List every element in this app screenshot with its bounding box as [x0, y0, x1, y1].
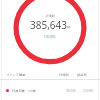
staticText: 円 — [67, 26, 71, 30]
staticText: 損益率 — [77, 73, 87, 77]
staticText: 100.00% — [83, 89, 94, 93]
staticText: 日興日株 — [12, 89, 25, 93]
staticText: 評価額 — [59, 73, 69, 77]
staticText: ベ日株 — [27, 89, 37, 93]
staticText: 385,643 — [66, 89, 76, 93]
staticText: ファンド概要 — [6, 73, 26, 77]
staticText: 100.00% — [44, 35, 56, 39]
staticText: 385,643 — [30, 18, 67, 32]
button[interactable]: 日興日株 — [0, 80, 100, 100]
staticText: 評価額 — [46, 14, 55, 18]
